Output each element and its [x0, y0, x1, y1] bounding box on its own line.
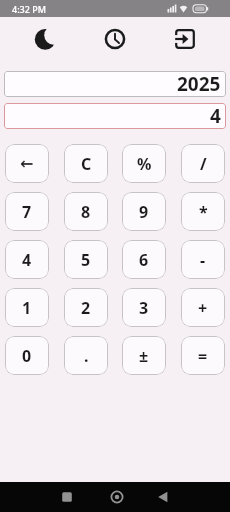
button[interactable]: ± [122, 336, 166, 375]
staticText: 4 [210, 103, 221, 129]
staticText: / [200, 153, 207, 175]
staticText: 2025 [177, 71, 221, 97]
button[interactable]: % [122, 144, 166, 183]
button[interactable]: 6 [122, 240, 166, 279]
staticText: 5 [81, 249, 91, 271]
staticText: 0 [22, 345, 32, 367]
button[interactable]: 2025 [4, 71, 226, 97]
button[interactable] [22, 17, 70, 61]
button[interactable] [56, 482, 78, 512]
button[interactable]: 5 [64, 240, 108, 279]
staticText: = [198, 345, 208, 367]
button[interactable]: = [181, 336, 225, 375]
staticText: ± [139, 345, 149, 367]
button[interactable] [152, 482, 174, 512]
button[interactable]: 4 [5, 240, 49, 279]
staticText: C [81, 153, 92, 175]
button[interactable]: 9 [122, 192, 166, 231]
button[interactable]: * [181, 192, 225, 231]
staticText: - [200, 249, 206, 271]
staticText: 9 [139, 201, 149, 223]
button[interactable]: 3 [122, 288, 166, 327]
staticText: 2 [81, 297, 91, 319]
staticText: 1 [22, 297, 32, 319]
staticText: 3 [139, 297, 149, 319]
button[interactable]: 8 [64, 192, 108, 231]
staticText: 6 [139, 249, 149, 271]
staticText: ← [20, 154, 34, 173]
button[interactable] [106, 482, 128, 512]
button[interactable]: - [181, 240, 225, 279]
button[interactable]: 2 [64, 288, 108, 327]
button[interactable]: 0 [5, 336, 49, 375]
staticText: 4:32 PM [12, 3, 46, 15]
staticText: + [198, 297, 208, 319]
button[interactable] [161, 17, 209, 61]
button[interactable]: 1 [5, 288, 49, 327]
button[interactable]: ← [5, 144, 49, 183]
staticText: . [84, 345, 89, 367]
staticText: 8 [81, 201, 91, 223]
staticText: * [199, 201, 208, 223]
button[interactable]: . [64, 336, 108, 375]
staticText: % [137, 153, 152, 175]
button[interactable]: 7 [5, 192, 49, 231]
button[interactable] [91, 17, 139, 61]
staticText: 7 [22, 201, 32, 223]
button[interactable]: / [181, 144, 225, 183]
button[interactable]: + [181, 288, 225, 327]
button[interactable]: C [64, 144, 108, 183]
staticText: 4 [22, 249, 32, 271]
button[interactable]: 4 [4, 103, 226, 129]
